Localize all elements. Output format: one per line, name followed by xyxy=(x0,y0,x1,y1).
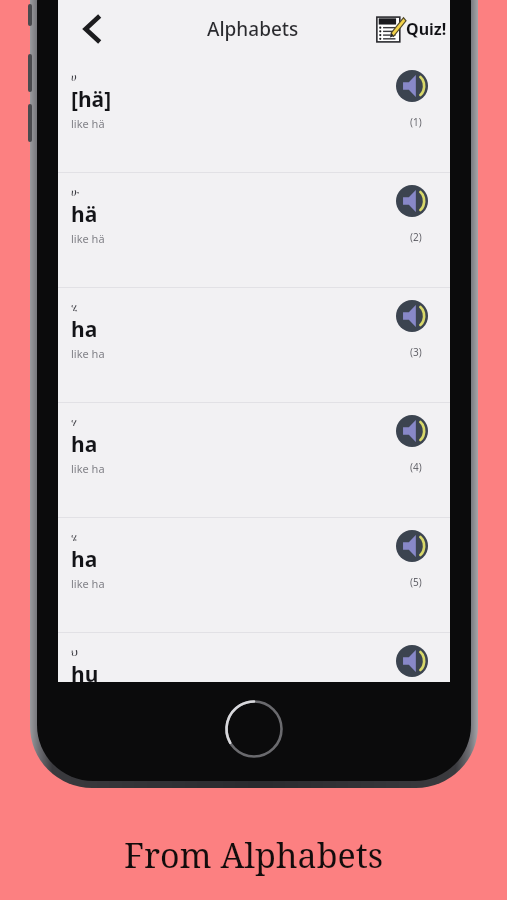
staticText: ሀ xyxy=(71,72,77,83)
button[interactable]: ሀ xyxy=(58,58,450,172)
staticText: ሃ xyxy=(71,417,77,428)
button[interactable]: ሂ xyxy=(58,288,450,402)
staticText: ha xyxy=(71,315,98,344)
button[interactable]: Back xyxy=(70,7,114,51)
staticText: (1) xyxy=(410,115,422,129)
button[interactable]: Play sound xyxy=(396,300,428,332)
staticText: ha xyxy=(71,430,98,459)
button[interactable]: Quiz! xyxy=(375,7,447,51)
staticText: ሄ xyxy=(71,532,78,543)
button[interactable]: Play sound xyxy=(396,530,428,562)
button[interactable]: Play sound xyxy=(396,70,428,102)
button[interactable]: Home xyxy=(225,700,283,758)
staticText: From Alphabets xyxy=(0,832,507,878)
staticText: like hä xyxy=(71,231,105,246)
staticText: Quiz! xyxy=(406,18,447,40)
staticText: like ha xyxy=(71,576,105,591)
staticText: Alphabets xyxy=(207,16,299,42)
button[interactable]: Play sound xyxy=(396,185,428,217)
button[interactable]: ህ xyxy=(58,633,450,682)
staticText: like ha xyxy=(71,346,105,361)
staticText: [hä] xyxy=(71,85,112,114)
staticText: (2) xyxy=(410,230,422,244)
staticText: (3) xyxy=(410,345,422,359)
staticText: like hä xyxy=(71,116,105,131)
button[interactable]: ሃ xyxy=(58,403,450,517)
staticText: (5) xyxy=(410,575,422,589)
staticText: like ha xyxy=(71,461,105,476)
staticText: ሁ xyxy=(71,187,80,198)
button[interactable]: Play sound xyxy=(396,415,428,447)
staticText: (4) xyxy=(410,460,422,474)
staticText: ha xyxy=(71,545,98,574)
button[interactable]: ሄ xyxy=(58,518,450,632)
staticText: ህ xyxy=(71,647,78,658)
staticText: hä xyxy=(71,200,98,229)
button[interactable]: ሁ xyxy=(58,173,450,287)
staticText: ሂ xyxy=(71,302,78,313)
button[interactable]: Play sound xyxy=(396,645,428,677)
staticText: hu xyxy=(71,660,99,682)
